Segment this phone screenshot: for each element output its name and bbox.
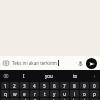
- button[interactable]: j: [60, 98, 69, 100]
- staticText: w: [13, 91, 17, 97]
- staticText: t: [44, 91, 46, 97]
- staticText: j: [64, 98, 66, 100]
- button[interactable]: Send: [86, 58, 97, 69]
- button[interactable]: q: [1, 90, 9, 97]
- staticText: d: [23, 98, 26, 100]
- button[interactable]: o: [80, 90, 89, 97]
- button[interactable]: 8: [70, 82, 79, 89]
- staticText: 0: [93, 83, 96, 89]
- staticText: I: [23, 73, 25, 79]
- staticText: y: [53, 91, 56, 97]
- staticText: q: [4, 91, 7, 97]
- staticText: o: [83, 91, 86, 97]
- button[interactable]: 2: [10, 82, 19, 89]
- staticText: 4: [33, 83, 36, 89]
- staticText: l: [84, 98, 86, 100]
- button[interactable]: I: [11, 70, 36, 82]
- staticText: 5: [43, 83, 46, 89]
- staticText: 8: [73, 83, 76, 89]
- button[interactable]: w: [10, 90, 19, 97]
- button[interactable]: i: [70, 90, 79, 97]
- button[interactable]: to: [62, 70, 88, 82]
- button[interactable]: 7: [60, 82, 69, 89]
- staticText: h: [53, 98, 56, 100]
- staticText: 7: [63, 83, 66, 89]
- button[interactable]: More suggestions: [88, 70, 100, 82]
- button[interactable]: a: [1, 98, 9, 100]
- button[interactable]: p: [90, 90, 99, 97]
- staticText: you: [45, 73, 53, 79]
- staticText: 2: [13, 83, 16, 89]
- staticText: to: [73, 73, 78, 79]
- button[interactable]: h: [50, 98, 59, 100]
- button[interactable]: d: [20, 98, 29, 100]
- staticText: Teks ini akan terkirim: [12, 60, 57, 66]
- staticText: 1: [4, 83, 7, 89]
- button[interactable]: f: [30, 98, 39, 100]
- staticText: 6: [53, 83, 56, 89]
- button[interactable]: you: [36, 70, 62, 82]
- button[interactable]: t: [40, 90, 49, 97]
- staticText: i: [74, 91, 76, 97]
- button[interactable]: k: [70, 98, 79, 100]
- button[interactable]: 3: [20, 82, 29, 89]
- button[interactable]: Attach image: [1, 58, 11, 68]
- button[interactable]: y: [50, 90, 59, 97]
- staticText: u: [63, 91, 66, 97]
- button[interactable]: 0: [90, 82, 99, 89]
- staticText: f: [34, 98, 36, 100]
- button[interactable]: 4: [30, 82, 39, 89]
- staticText: e: [23, 91, 26, 97]
- staticText: r: [34, 91, 36, 97]
- button[interactable]: Keyboard settings: [0, 70, 11, 82]
- staticText: 3: [23, 83, 26, 89]
- staticText: p: [93, 91, 96, 97]
- button[interactable]: u: [60, 90, 69, 97]
- button[interactable]: 9: [80, 82, 89, 89]
- button[interactable]: 5: [40, 82, 49, 89]
- button[interactable]: Voice input: [75, 58, 85, 68]
- staticText: k: [73, 98, 76, 100]
- staticText: 9: [83, 83, 86, 89]
- button[interactable]: e: [20, 90, 29, 97]
- button[interactable]: r: [30, 90, 39, 97]
- button[interactable]: 6: [50, 82, 59, 89]
- button[interactable]: 1: [1, 82, 9, 89]
- button[interactable]: l: [80, 98, 89, 100]
